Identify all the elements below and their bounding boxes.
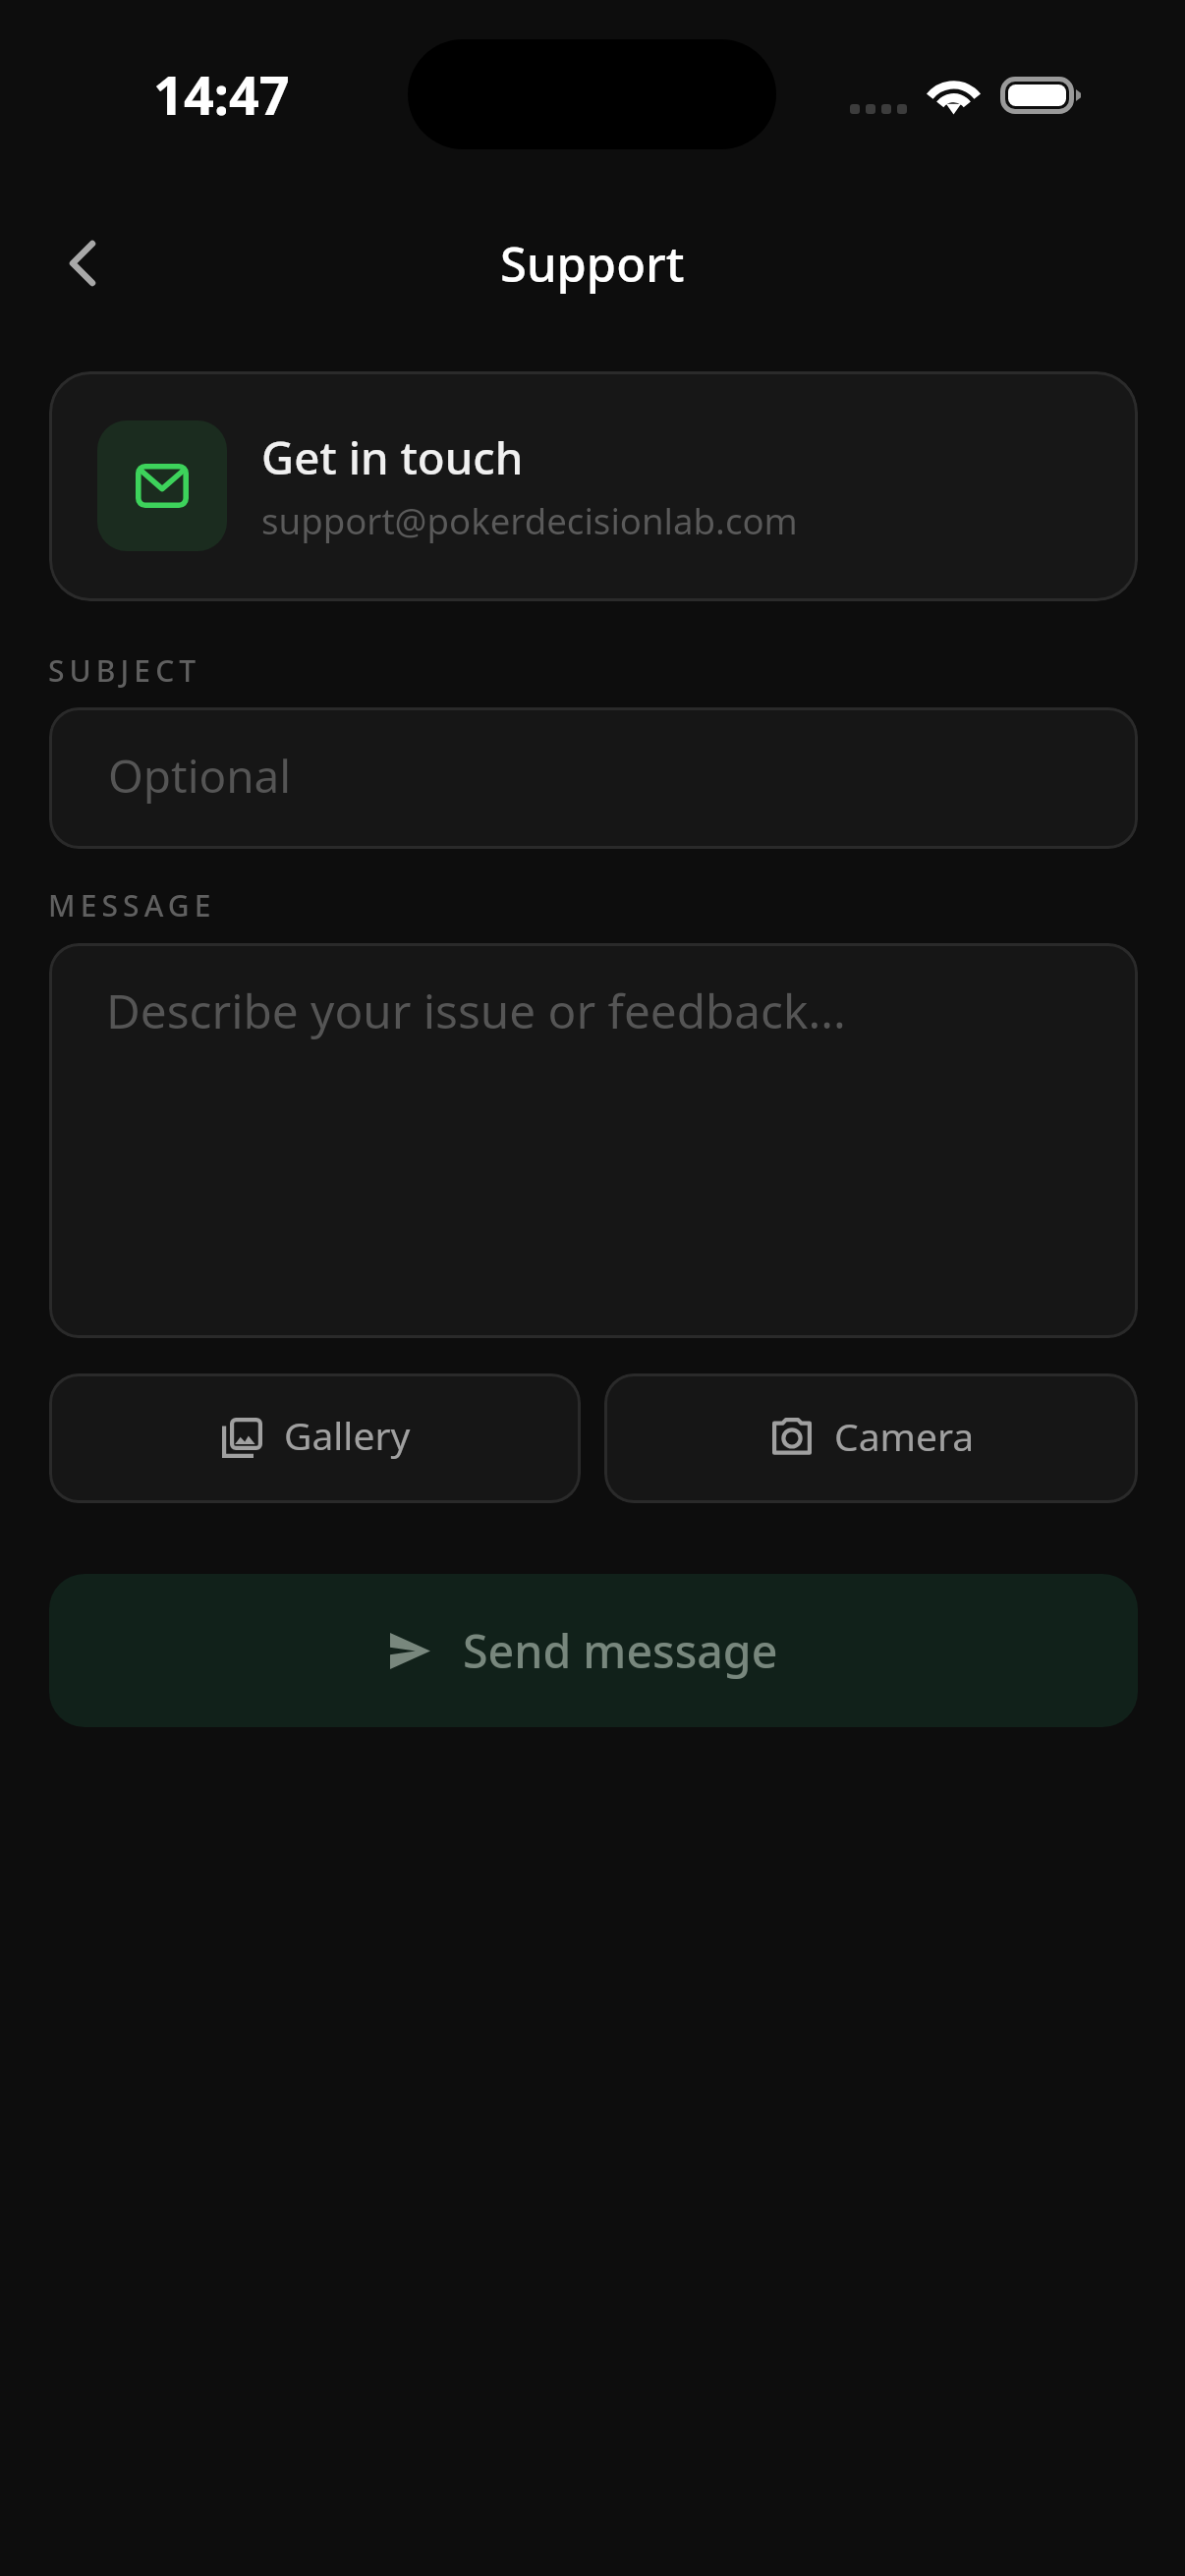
staticText: Get in touch [261,426,524,487]
button[interactable]: Back [14,195,151,332]
staticText: 14:47 [153,58,290,131]
staticText: Describe your issue or feedback... [106,979,846,1042]
button[interactable]: Gallery [49,1373,581,1503]
staticText: MESSAGE [48,885,216,925]
staticText: Support [500,231,685,297]
staticText: SUBJECT [48,650,201,691]
button[interactable]: Camera [604,1373,1138,1503]
staticText: support@pokerdecisionlab.com [261,496,798,545]
button[interactable]: Optional [49,707,1138,849]
staticText: Send message [463,1619,778,1681]
staticText: Gallery [284,1409,411,1461]
button[interactable]: Describe your issue or feedback... [49,943,1138,1338]
staticText: Optional [108,745,292,807]
staticText: Camera [834,1410,975,1462]
button[interactable]: Get in touch [49,371,1138,601]
button[interactable]: Send message [49,1574,1138,1727]
